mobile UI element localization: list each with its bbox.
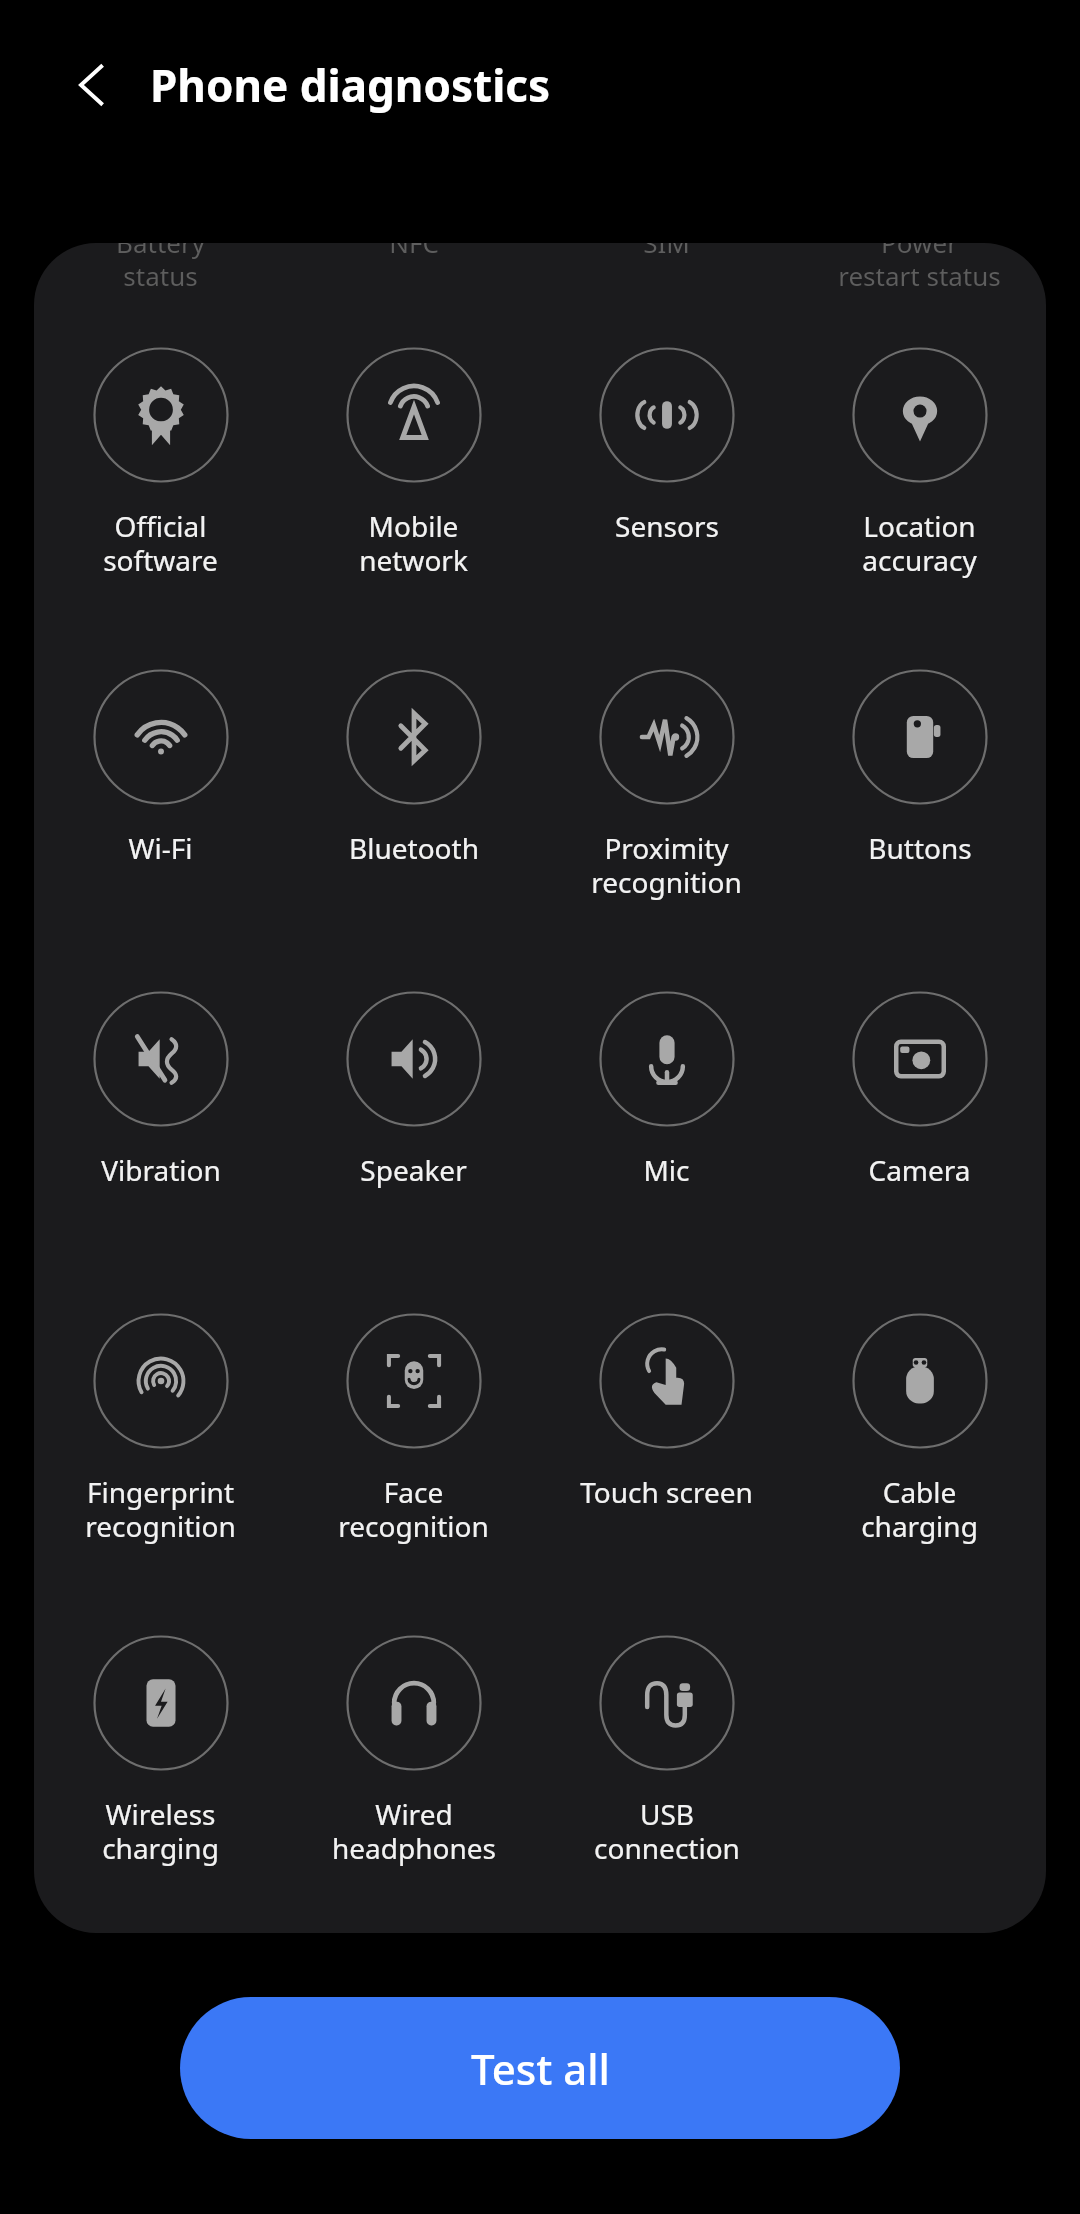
button[interactable]: Cable charging: [793, 1313, 1046, 1546]
button[interactable]: Fingerprint recognition: [34, 1313, 287, 1546]
staticText: Official software: [103, 507, 218, 580]
button[interactable]: Proximity recognition: [540, 669, 793, 902]
button[interactable]: Mobile network: [287, 347, 540, 580]
button[interactable]: Wired headphones: [287, 1635, 540, 1868]
staticText: Wireless charging: [102, 1795, 219, 1868]
button[interactable]: Location accuracy: [793, 347, 1046, 580]
staticText: Face recognition: [338, 1473, 489, 1546]
staticText: Proximity recognition: [591, 829, 742, 902]
staticText: Location accuracy: [862, 507, 977, 580]
staticText: SIM: [643, 243, 690, 260]
staticText: Camera: [868, 1151, 971, 1189]
staticText: Mic: [643, 1151, 690, 1189]
button[interactable]: Official software: [34, 347, 287, 580]
button[interactable]: Wireless charging: [34, 1635, 287, 1868]
button[interactable]: Speaker: [287, 991, 540, 1189]
staticText: Speaker: [360, 1151, 467, 1189]
staticText: Battery status: [116, 243, 205, 293]
staticText: Sensors: [615, 507, 719, 545]
button[interactable]: Face recognition: [287, 1313, 540, 1546]
staticText: Wi-Fi: [128, 829, 193, 867]
staticText: Vibration: [101, 1151, 221, 1189]
staticText: Buttons: [868, 829, 972, 867]
button[interactable]: USB connection: [540, 1635, 793, 1868]
button[interactable]: Camera: [793, 991, 1046, 1189]
button[interactable]: Touch screen: [540, 1313, 793, 1511]
button[interactable]: Mic: [540, 991, 793, 1189]
staticText: Bluetooth: [349, 829, 479, 867]
button[interactable]: Test all: [180, 1997, 900, 2139]
button[interactable]: Vibration: [34, 991, 287, 1189]
staticText: Wired headphones: [332, 1795, 496, 1868]
button[interactable]: Bluetooth: [287, 669, 540, 867]
button[interactable]: Wi-Fi: [34, 669, 287, 867]
staticText: Test all: [471, 2040, 610, 2097]
staticText: Power restart status: [838, 243, 1001, 293]
staticText: Fingerprint recognition: [85, 1473, 236, 1546]
staticText: Touch screen: [580, 1473, 753, 1511]
staticText: Cable charging: [861, 1473, 978, 1546]
staticText: Mobile network: [359, 507, 468, 580]
button[interactable]: Back: [56, 49, 128, 121]
button[interactable]: Sensors: [540, 347, 793, 545]
staticText: Phone diagnostics: [150, 55, 551, 115]
staticText: USB connection: [594, 1795, 740, 1868]
staticText: NFC: [389, 243, 439, 260]
button[interactable]: Buttons: [793, 669, 1046, 867]
